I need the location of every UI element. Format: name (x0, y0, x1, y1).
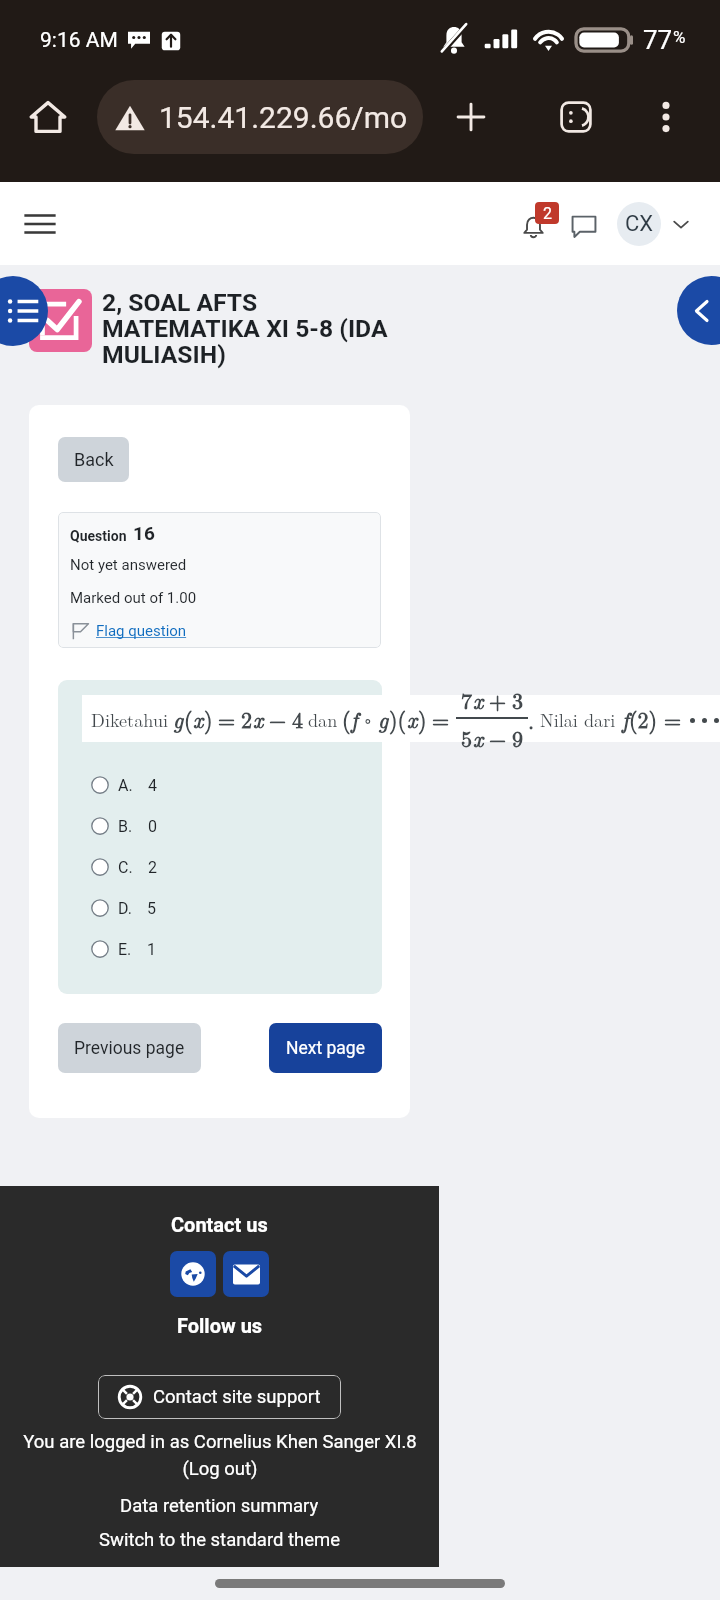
button[interactable]: Menu (18, 202, 62, 246)
staticText: )( (389, 703, 407, 734)
staticText: Previous page (74, 1038, 185, 1059)
staticText: 2 (241, 703, 253, 734)
staticText: Contact site support (153, 1386, 321, 1408)
staticText: ) (204, 703, 213, 734)
staticText: 5 (147, 899, 156, 918)
staticText: x (473, 722, 484, 753)
staticText: g (173, 703, 184, 734)
staticText: 3 (512, 684, 524, 715)
button[interactable]: CX (617, 202, 691, 246)
staticText: Back (74, 449, 114, 470)
staticText: = (664, 703, 682, 734)
button[interactable]: Contact site support (98, 1375, 341, 1419)
staticText: g (378, 703, 389, 734)
staticText: You are logged in as Cornelius Khen Sang… (10, 1431, 430, 1480)
staticText: A. (118, 776, 133, 795)
staticText: 5 (461, 722, 473, 753)
staticText: ) (418, 703, 427, 734)
staticText: = (432, 703, 450, 734)
staticText: C. (118, 858, 133, 877)
staticText: . (528, 704, 535, 735)
staticText: Next page (286, 1038, 365, 1059)
staticText: 2 (148, 858, 157, 877)
button[interactable]: Messages (562, 202, 606, 246)
staticText: f (622, 703, 629, 734)
staticText: 4 (292, 703, 304, 734)
staticText: f (351, 703, 358, 734)
button[interactable]: Data retention summary (120, 1495, 319, 1517)
staticText: Diketahui (91, 706, 169, 732)
staticText: 2, SOAL AFTS MATEMATIKA XI 5-8 (IDA MULI… (102, 288, 402, 369)
staticText: Question (70, 528, 127, 544)
staticText: 154.41.229.66/mo (159, 100, 408, 135)
staticText: dan (308, 706, 338, 732)
button[interactable]: Email (223, 1251, 269, 1297)
button[interactable]: New tab (446, 92, 496, 142)
staticText: + (489, 684, 507, 715)
staticText: Follow us (177, 1314, 263, 1337)
button[interactable]: Flag question (70, 620, 187, 641)
staticText: % (673, 27, 686, 47)
button[interactable]: Previous page (58, 1023, 201, 1073)
staticText: = (218, 703, 236, 734)
staticText: (2) (629, 703, 658, 734)
staticText: 7 (461, 684, 473, 715)
staticText: Nilai dari (540, 706, 616, 732)
button[interactable]: Switch to the standard theme (99, 1529, 341, 1551)
button[interactable]: Tabs (551, 92, 601, 142)
button[interactable]: Notifications (514, 202, 558, 246)
staticText: 77 (643, 25, 673, 55)
button[interactable]: Open quiz navigation (0, 276, 48, 346)
staticText: Marked out of 1.00 (70, 589, 197, 607)
staticText: ( (342, 703, 351, 734)
staticText: 4 (148, 776, 157, 795)
staticText: 9:16 AM (40, 28, 118, 53)
staticText: CX (625, 211, 654, 237)
button[interactable]: B. (58, 806, 382, 846)
staticText: x (193, 703, 204, 734)
button[interactable]: Home (24, 93, 72, 141)
staticText: D. (118, 899, 132, 918)
staticText: 9 (512, 722, 524, 753)
staticText: x (253, 703, 264, 734)
staticText: 16 (133, 522, 155, 544)
button[interactable]: Previous (677, 276, 720, 345)
staticText: − (269, 703, 287, 734)
staticText: x (407, 703, 418, 734)
staticText: − (489, 722, 507, 753)
staticText: 1 (147, 940, 156, 959)
staticText: ◦ (362, 708, 374, 729)
button[interactable]: More options (643, 94, 689, 140)
staticText: E. (118, 940, 132, 959)
button[interactable]: Next page (269, 1023, 382, 1073)
button[interactable]: Website (170, 1251, 216, 1297)
button[interactable]: D. (58, 888, 382, 928)
button[interactable]: A. (58, 765, 382, 805)
button[interactable]: 154.41.229.66/mo (97, 80, 423, 154)
staticText: ( (184, 703, 193, 734)
staticText: Flag question (96, 622, 187, 640)
staticText: B. (118, 817, 133, 836)
staticText: Not yet answered (70, 556, 187, 574)
button[interactable]: C. (58, 847, 382, 887)
staticText: 0 (148, 817, 157, 836)
button[interactable]: E. (58, 929, 382, 969)
staticText: x (473, 684, 484, 715)
staticText: Contact us (171, 1213, 268, 1236)
button[interactable]: Back (58, 437, 129, 482)
staticText: 2 (543, 204, 552, 223)
